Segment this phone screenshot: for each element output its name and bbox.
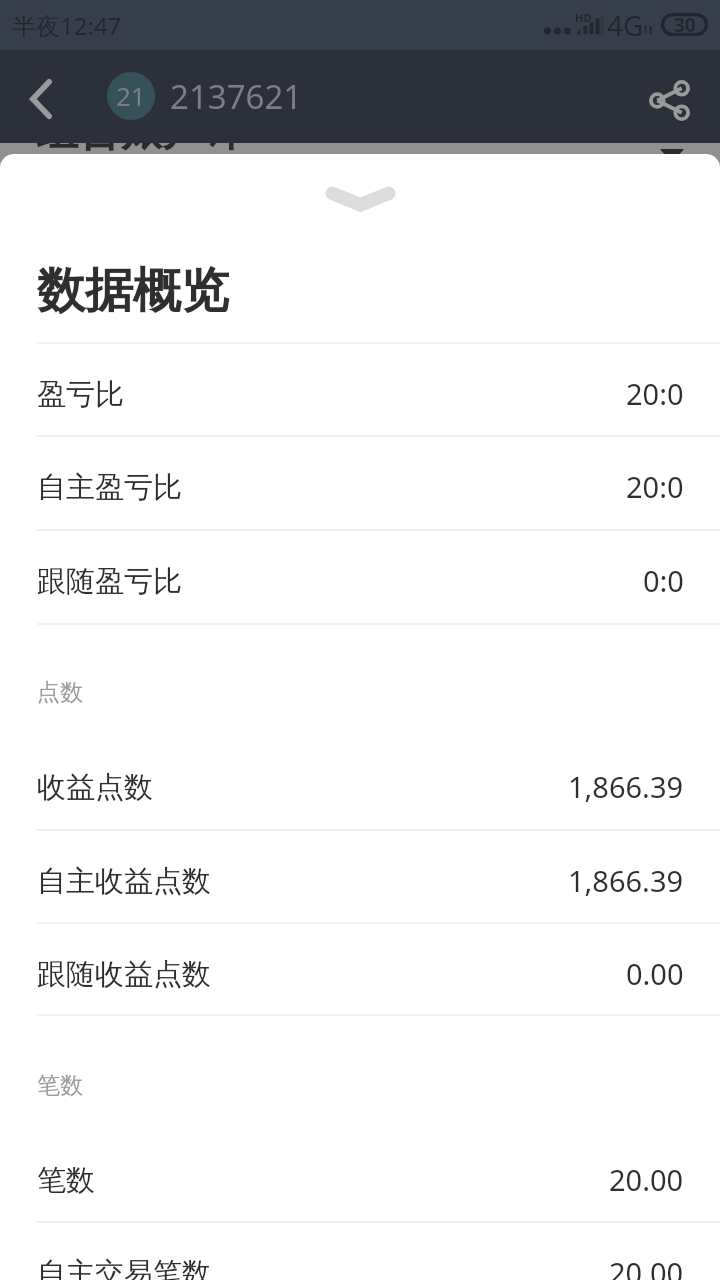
staticText: 点数	[37, 678, 83, 707]
button[interactable]: 跟随盈亏比	[0, 529, 720, 622]
staticText: 自主收益点数	[37, 863, 211, 900]
staticText: 数据概览	[37, 261, 229, 321]
button[interactable]: 自主收益点数	[0, 829, 720, 922]
staticText: 自主盈亏比	[37, 469, 182, 506]
staticText: 20:0	[626, 374, 684, 413]
staticText: 20.00	[609, 1160, 684, 1199]
button[interactable]: 盈亏比	[0, 342, 720, 435]
button[interactable]: Back	[0, 60, 80, 136]
staticText: 0:0	[643, 561, 684, 600]
staticText: 1,866.39	[568, 861, 684, 900]
staticText: 笔数	[37, 1071, 83, 1100]
button[interactable]: Share	[632, 62, 708, 138]
staticText: 20.00	[609, 1253, 684, 1280]
staticText: 20:0	[626, 467, 684, 506]
staticText: 笔数	[37, 1162, 95, 1199]
staticText: 2137621	[170, 74, 303, 119]
staticText: 21	[116, 78, 146, 113]
staticText: 收益点数	[37, 769, 153, 806]
button[interactable]: 跟随收益点数	[0, 922, 720, 1015]
staticText: 跟随收益点数	[37, 956, 211, 993]
staticText: 组合账户详	[36, 105, 246, 154]
button[interactable]: 自主盈亏比	[0, 435, 720, 528]
staticText: 1,866.39	[568, 767, 684, 806]
staticText: 跟随盈亏比	[37, 563, 182, 600]
staticText: 自主交易笔数	[37, 1255, 211, 1280]
button[interactable]: 自主交易笔数	[0, 1221, 720, 1280]
button[interactable]: 笔数	[0, 1128, 720, 1221]
staticText: 4G	[607, 6, 644, 44]
staticText: 盈亏比	[37, 376, 124, 413]
button[interactable]: 收益点数	[0, 735, 720, 828]
staticText: 0.00	[626, 954, 684, 993]
staticText: 30	[674, 12, 696, 35]
staticText: 半夜12:47	[12, 9, 122, 42]
staticText: HD	[575, 10, 592, 25]
